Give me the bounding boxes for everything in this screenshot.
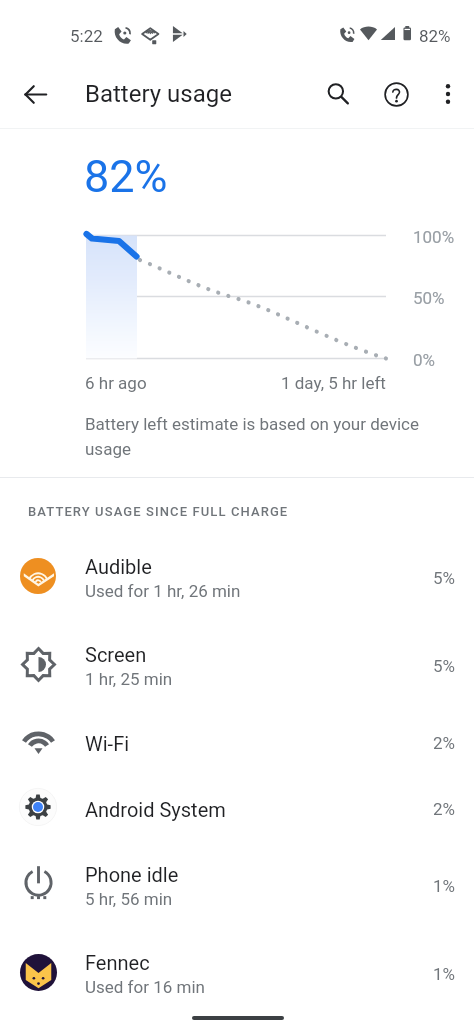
button[interactable]: Help (372, 70, 420, 118)
button[interactable]: Wi-Fi (0, 710, 474, 776)
staticText: Screen (85, 643, 147, 666)
staticText: Battery usage (85, 80, 232, 108)
staticText: 1 day, 5 hr left (281, 373, 386, 393)
staticText: 5% (433, 656, 456, 676)
button[interactable]: Search (314, 70, 362, 118)
staticText: 2% (433, 733, 456, 753)
button[interactable]: Navigate up (11, 70, 59, 118)
staticText: 100% (413, 227, 455, 247)
button[interactable]: Screen (0, 622, 474, 710)
staticText: 1% (433, 964, 456, 984)
staticText: 82% (419, 26, 451, 46)
staticText: Phone idle (85, 863, 179, 886)
button[interactable]: Audible (0, 534, 474, 622)
staticText: Fennec (85, 951, 150, 974)
staticText: Android System (85, 798, 226, 821)
staticText: 6 hr ago (85, 373, 147, 393)
staticText: Wi-Fi (85, 732, 130, 755)
button[interactable]: More options (424, 70, 472, 118)
staticText: 1 hr, 25 min (85, 669, 173, 689)
staticText: 2% (433, 799, 456, 819)
staticText: Used for 16 min (85, 977, 205, 997)
button[interactable]: Android System (0, 776, 474, 842)
staticText: 5% (433, 568, 456, 588)
staticText: Used for 1 hr, 26 min (85, 581, 241, 601)
staticText: 0% (413, 350, 436, 370)
staticText: 5 hr, 56 min (85, 889, 173, 909)
staticText: 82% (84, 150, 168, 203)
staticText: 50% (413, 288, 445, 308)
staticText: 5:22 (70, 26, 103, 46)
staticText: Battery left estimate is based on your d… (85, 414, 450, 459)
staticText: Audible (85, 555, 152, 578)
button[interactable]: Fennec (0, 930, 474, 1018)
staticText: BATTERY USAGE SINCE FULL CHARGE (28, 504, 289, 519)
staticText: 1% (433, 876, 456, 896)
button[interactable]: Phone idle (0, 842, 474, 930)
